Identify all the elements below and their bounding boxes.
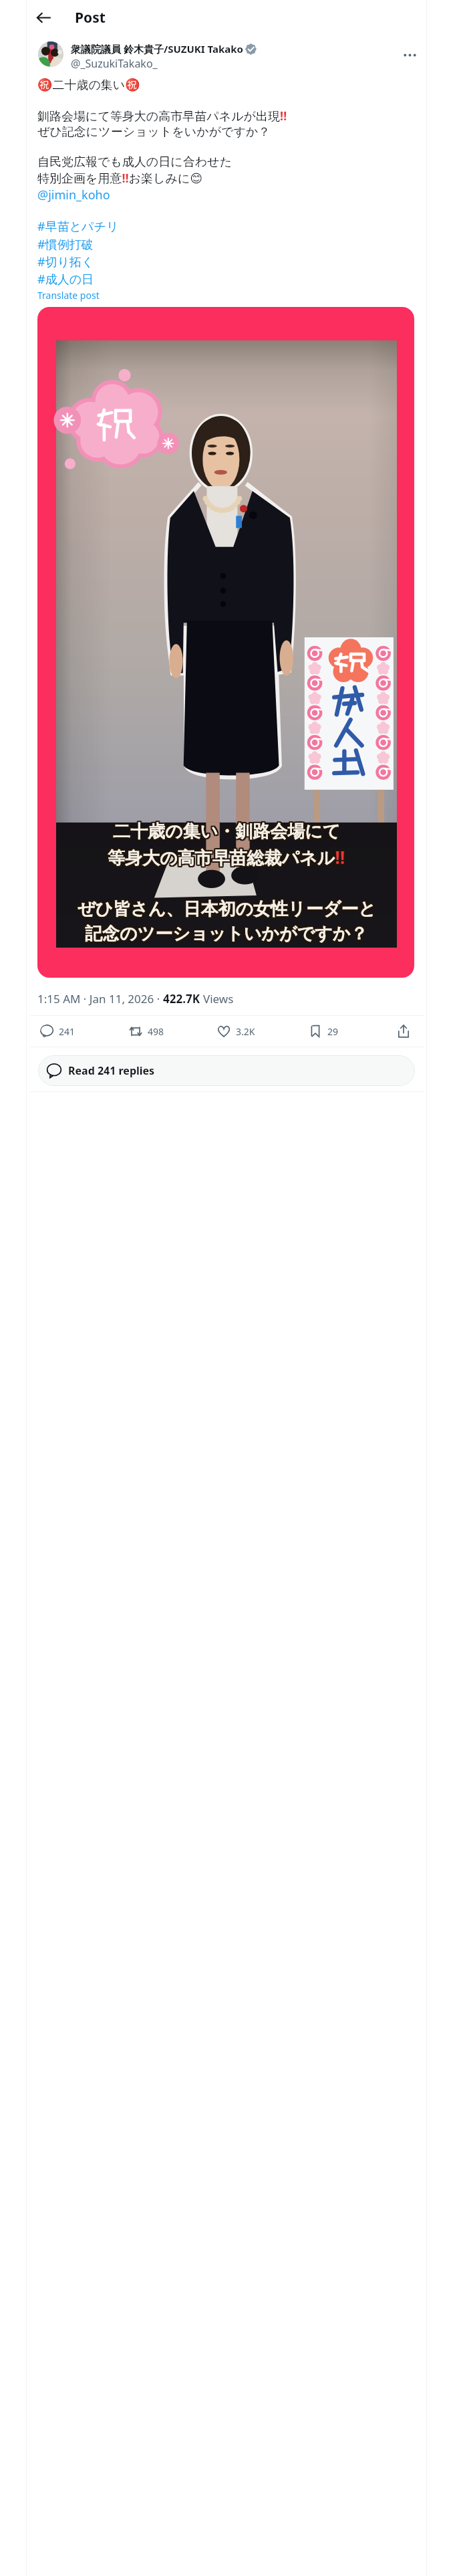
staticText: 記念のツーショットいかがですか？ [86,924,369,946]
button[interactable]: Read 241 replies [38,1055,415,1086]
staticText: ぜひ記念にツーショットをいかがですか？ [37,124,271,140]
staticText: 29 [327,1025,339,1038]
staticText: 記念のツーショットいかがですか？ [86,924,369,946]
staticText: 等身大の高市早苗総裁パネル‼ [107,847,345,871]
staticText: 二十歳の集い・釧路会場にて [114,821,342,843]
staticText: 等身大の高市早苗総裁パネル‼ [108,845,345,869]
staticText: 等身大の高市早苗総裁パネル‼ [107,844,345,868]
staticText: 498 [148,1025,164,1038]
staticText: 等身大の高市早苗総裁パネル‼ [108,846,346,870]
staticText: ぜひ皆さん、日本初の女性リーダーと [77,899,375,922]
staticText: 記念のツーショットいかがですか？ [84,924,367,946]
staticText: 等身大の高市早苗総裁パネル‼ [108,844,346,868]
staticText: ぜひ皆さん、日本初の女性リーダーと [76,897,375,919]
staticText: 記念のツーショットいかがですか？ [85,924,368,946]
staticText: 二十歳の集い・釧路会場にて [113,821,341,843]
staticText: @_SuzukiTakako_ [71,56,158,71]
staticText: 釧路会場にて等身大の高市早苗パネルが出現‼ [37,108,287,124]
staticText: 記念のツーショットいかがですか？ [84,924,367,946]
staticText: 二十歳の集い・釧路会場にて [114,819,341,841]
staticText: 記念のツーショットいかがですか？ [86,923,369,945]
staticText: 等身大の高市早苗総裁パネル‼ [109,846,347,870]
staticText: 記念のツーショットいかがですか？ [84,924,367,946]
staticText: 二十歳の集い・釧路会場にて [114,821,341,843]
button[interactable]: More options [398,43,421,66]
staticText: 等身大の高市早苗総裁パネル‼ [106,845,344,869]
staticText: 二十歳の集い・釧路会場にて [112,819,340,841]
staticText: 記念のツーショットいかがですか？ [85,922,368,944]
button[interactable]: Bookmark [309,1025,343,1038]
staticText: 等身大の高市早苗総裁パネル‼ [109,847,347,871]
button[interactable]: Reply [40,1025,80,1038]
staticText: ぜひ皆さん、日本初の女性リーダーと [76,899,375,922]
staticText: 記念のツーショットいかがですか？ [84,922,367,944]
button[interactable]: #早苗とパチリ #慣例打破 #切り拓く #成人の日 [37,218,119,287]
staticText: 記念のツーショットいかがですか？ [86,922,369,944]
staticText: 二十歳の集い・釧路会場にて [112,820,340,842]
staticText: ぜひ皆さん、日本初の女性リーダーと [78,898,377,920]
button[interactable]: Share [392,1019,416,1043]
staticText: 二十歳の集い・釧路会場にて [114,822,342,844]
staticText: 記念のツーショットいかがですか？ [86,924,369,946]
staticText: 二十歳の集い・釧路会場にて [113,822,341,844]
staticText: ぜひ皆さん、日本初の女性リーダーと [76,899,375,921]
staticText: ぜひ皆さん、日本初の女性リーダーと [77,899,375,921]
staticText: 二十歳の集い・釧路会場にて [112,821,339,843]
staticText: ㊗二十歳の集い㊗ [37,78,140,93]
staticText: 二十歳の集い・釧路会場にて [113,820,341,842]
staticText: 記念のツーショットいかがですか？ [86,922,369,944]
staticText: 二十歳の集い・釧路会場にて [114,822,341,844]
staticText: 等身大の高市早苗総裁パネル‼ [108,844,345,868]
staticText: ぜひ皆さん、日本初の女性リーダーと [76,898,375,920]
staticText: ぜひ皆さん、日本初の女性リーダーと [78,899,377,922]
staticText: 等身大の高市早苗総裁パネル‼ [108,845,346,869]
staticText: 記念のツーショットいかがですか？ [84,922,367,944]
staticText: 等身大の高市早苗総裁パネル‼ [106,845,344,869]
button[interactable]: @jimin_koho [37,187,110,203]
staticText: 等身大の高市早苗総裁パネル‼ [109,844,347,868]
staticText: 記念のツーショットいかがですか？ [85,923,368,945]
button[interactable]: Back [30,4,57,31]
staticText: 二十歳の集い・釧路会場にて [114,820,341,842]
staticText: 等身大の高市早苗総裁パネル‼ [109,845,347,869]
button[interactable]: Post image [37,307,414,978]
staticText: ぜひ皆さん、日本初の女性リーダーと [78,897,376,919]
staticText: ぜひ皆さん、日本初の女性リーダーと [79,898,378,920]
staticText: 記念のツーショットいかがですか？ [84,924,367,946]
staticText: ぜひ皆さん、日本初の女性リーダーと [78,897,377,919]
staticText: 衆議院議員 鈴木貴子/SUZUKI Takako [71,42,243,56]
staticText: 3.2K [236,1025,255,1038]
staticText: 二十歳の集い・釧路会場にて [113,819,341,841]
staticText: 等身大の高市早苗総裁パネル‼ [108,845,346,869]
staticText: 二十歳の集い・釧路会場にて [112,822,340,844]
staticText: ぜひ皆さん、日本初の女性リーダーと [77,897,375,919]
staticText: 等身大の高市早苗総裁パネル‼ [108,847,345,871]
staticText: ぜひ皆さん、日本初の女性リーダーと [79,897,378,919]
staticText: 422.7K [163,991,203,1006]
staticText: 等身大の高市早苗総裁パネル‼ [107,846,345,870]
staticText: ぜひ皆さん、日本初の女性リーダーと [78,899,377,921]
staticText: ぜひ皆さん、日本初の女性リーダーと [79,897,378,920]
staticText: 二十歳の集い・釧路会場にて [114,821,342,843]
staticText: 等身大の高市早苗総裁パネル‼ [108,846,345,870]
staticText: 等身大の高市早苗総裁パネル‼ [106,847,344,871]
staticText: 等身大の高市早苗総裁パネル‼ [108,847,346,871]
button[interactable]: Translate post [37,289,100,302]
staticText: ぜひ皆さん、日本初の女性リーダーと [77,898,375,920]
button[interactable]: Repost [129,1025,168,1038]
staticText: ぜひ皆さん、日本初の女性リーダーと [76,897,375,920]
staticText: 等身大の高市早苗総裁パネル‼ [106,846,344,870]
staticText: 記念のツーショットいかがですか？ [85,924,368,946]
staticText: 二十歳の集い・釧路会場にて [114,819,342,841]
button[interactable]: Like [217,1025,259,1038]
staticText: 記念のツーショットいかがですか？ [84,923,367,945]
staticText: 二十歳の集い・釧路会場にて [112,820,339,842]
staticText: 等身大の高市早苗総裁パネル‼ [107,845,345,869]
staticText: ぜひ皆さん、日本初の女性リーダーと [78,897,376,920]
staticText: 記念のツーショットいかがですか？ [86,923,369,945]
staticText: 1:15 AM · Jan 11, 2026 · [37,991,163,1006]
staticText: ぜひ皆さん、日本初の女性リーダーと [78,897,377,920]
staticText: 等身大の高市早苗総裁パネル‼ [107,845,345,869]
staticText: 二十歳の集い・釧路会場にて [112,821,340,843]
staticText: Post [75,8,106,27]
